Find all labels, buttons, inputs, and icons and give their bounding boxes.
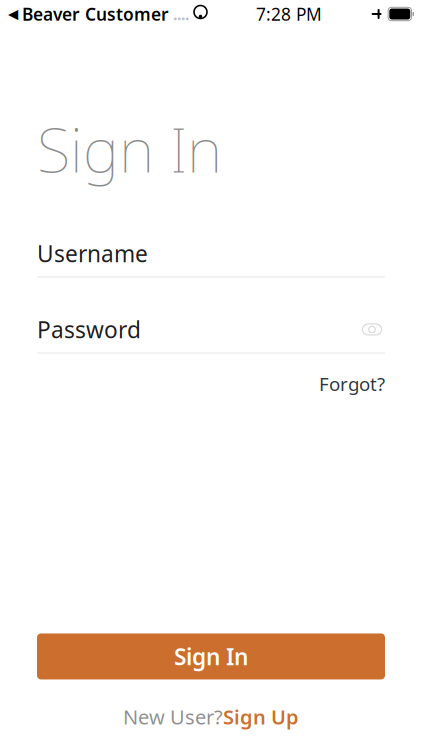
- staticText: Password: [37, 314, 141, 344]
- button[interactable]: Show password: [359, 318, 385, 340]
- staticText: Sign Up: [223, 703, 299, 730]
- staticText: ◀: [8, 6, 18, 21]
- button[interactable]: Sign Up: [223, 703, 299, 730]
- staticText: 7:28 PM: [256, 2, 322, 25]
- staticText: Sign In: [174, 641, 248, 671]
- staticText: New User?: [123, 703, 223, 730]
- staticText: Sign In: [37, 108, 222, 189]
- button[interactable]: Sign In: [37, 633, 385, 679]
- staticText: Forgot?: [319, 371, 385, 396]
- staticText: ....: [173, 3, 189, 25]
- staticText: Beaver Customer: [22, 2, 169, 25]
- button[interactable]: Forgot?: [309, 367, 385, 400]
- staticText: Username: [37, 238, 148, 268]
